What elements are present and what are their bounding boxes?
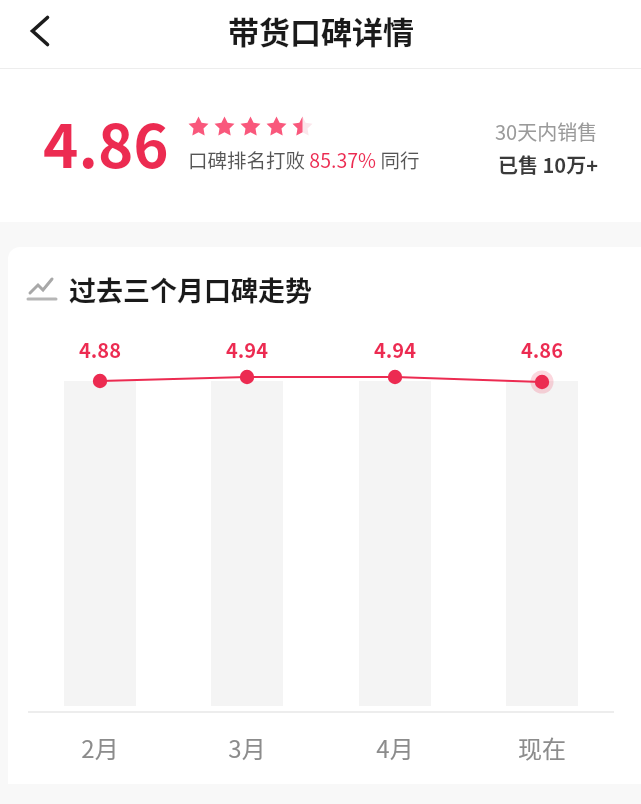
- staticText: 4.86: [502, 335, 582, 364]
- staticText: 带货口碑详情: [228, 8, 414, 53]
- staticText: 4.88: [60, 335, 140, 364]
- staticText: 30天内销售: [495, 117, 598, 146]
- button[interactable]: 过去三个月口碑走势: [8, 247, 641, 784]
- staticText: 口碑排名打败 85.37% 同行: [188, 145, 420, 173]
- staticText: 3月: [207, 730, 287, 765]
- staticText: 4月: [355, 730, 435, 765]
- staticText: 现在: [502, 730, 582, 765]
- staticText: 已售 10万+: [498, 150, 598, 179]
- staticText: 过去三个月口碑走势: [69, 270, 312, 309]
- button[interactable]: Back: [19, 9, 63, 53]
- staticText: 4.86: [43, 98, 169, 185]
- button[interactable]: 4.86: [0, 62, 641, 222]
- staticText: 2月: [60, 730, 140, 765]
- staticText: 4.94: [355, 335, 435, 364]
- staticText: 4.94: [207, 335, 287, 364]
